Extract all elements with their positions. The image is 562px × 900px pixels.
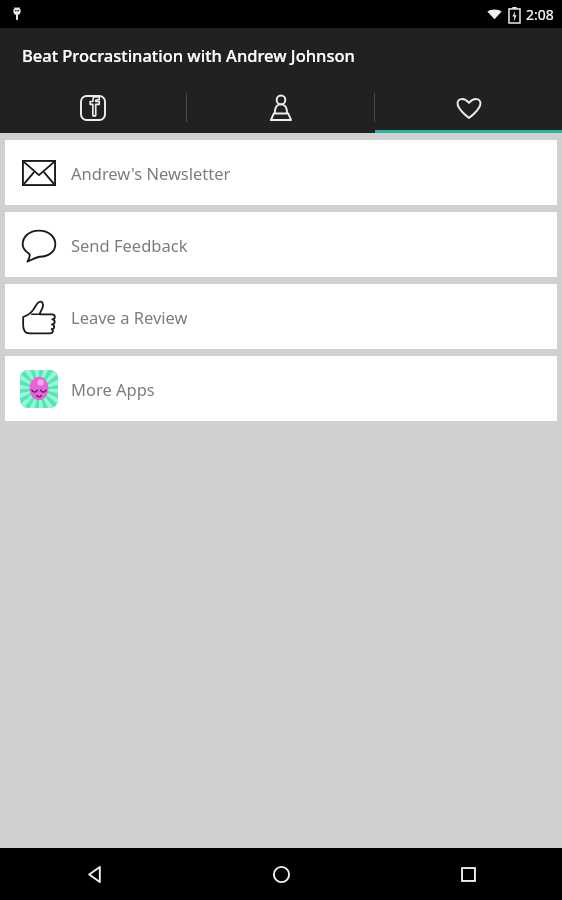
button[interactable]: Meditation	[187, 82, 374, 133]
button[interactable]: Favourites	[375, 82, 562, 133]
button[interactable]: Home	[188, 848, 375, 900]
staticText: More Apps	[71, 378, 155, 400]
button[interactable]: Send Feedback	[5, 212, 557, 277]
staticText: Send Feedback	[71, 234, 188, 256]
staticText: Leave a Review	[71, 306, 188, 328]
button[interactable]: Back	[0, 848, 188, 900]
staticText: Andrew's Newsletter	[71, 162, 231, 184]
staticText: Beat Procrastination with Andrew Johnson	[22, 44, 355, 66]
button[interactable]: Andrew's Newsletter	[5, 140, 557, 205]
button[interactable]: Recents	[375, 848, 562, 900]
button[interactable]: Leave a Review	[5, 284, 557, 349]
button[interactable]: More Apps	[5, 356, 557, 421]
staticText: 2:08	[526, 5, 554, 24]
button[interactable]: Facebook	[0, 82, 186, 133]
